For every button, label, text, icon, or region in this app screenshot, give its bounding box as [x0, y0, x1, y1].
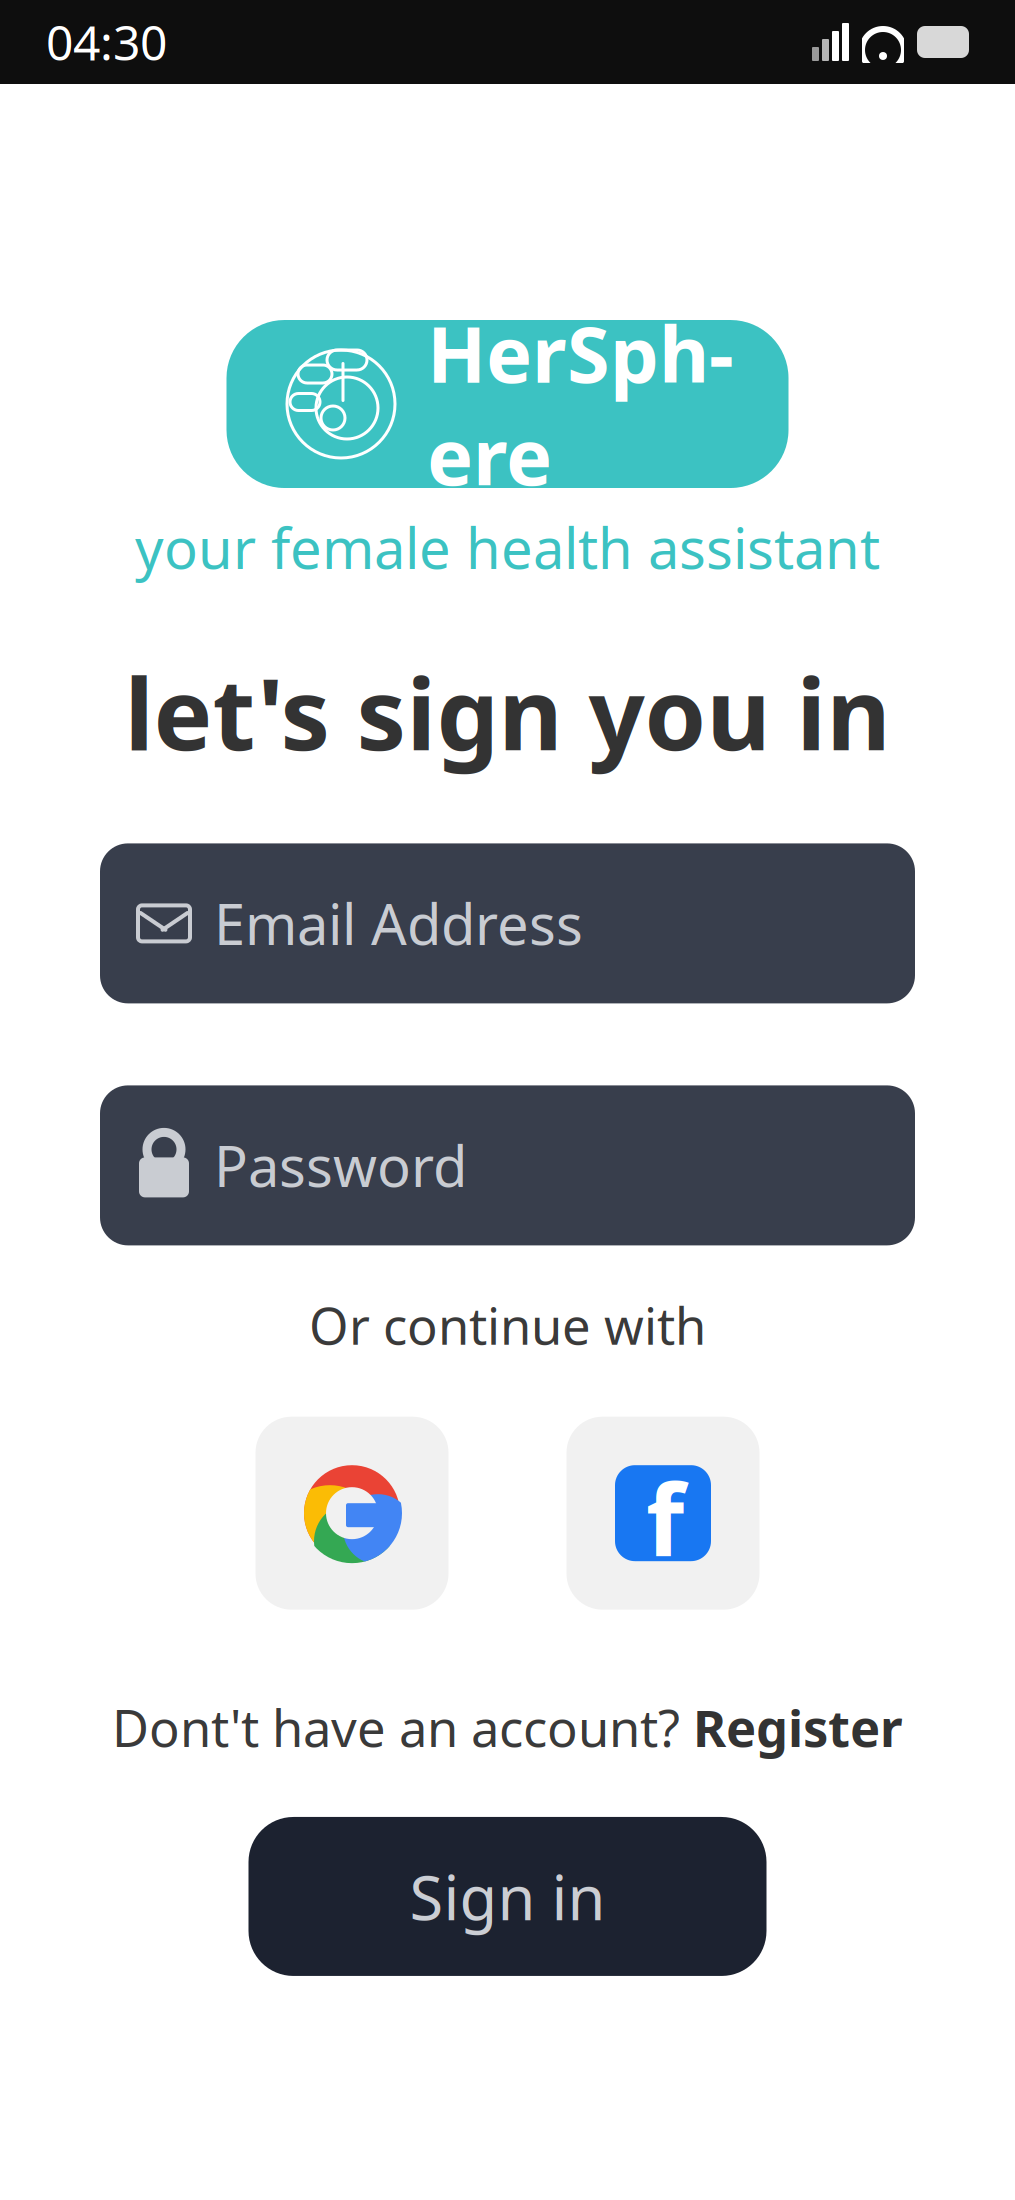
staticText: Email Address [214, 886, 583, 961]
staticText: f [646, 1452, 684, 1583]
button[interactable]: Dont't have an account? [102, 1686, 913, 1769]
staticText: Or continue with [309, 1291, 706, 1359]
staticText: let's sign you in [124, 646, 890, 777]
staticText: HerSphere [427, 301, 734, 507]
staticText: 04:30 [46, 10, 167, 74]
staticText: Password [214, 1128, 467, 1203]
staticText: Register [693, 1694, 903, 1761]
staticText: Sign in [409, 1856, 605, 1937]
staticText: Dont't have an account? [112, 1694, 693, 1761]
button[interactable]: Sign in with Facebook [566, 1417, 759, 1610]
button[interactable]: Sign in with Google [255, 1417, 448, 1610]
button[interactable]: Sign in [248, 1817, 766, 1976]
staticText: your female health assistant [135, 510, 880, 584]
button[interactable]: Password [100, 1085, 915, 1245]
button[interactable]: Email Address [100, 843, 915, 1003]
